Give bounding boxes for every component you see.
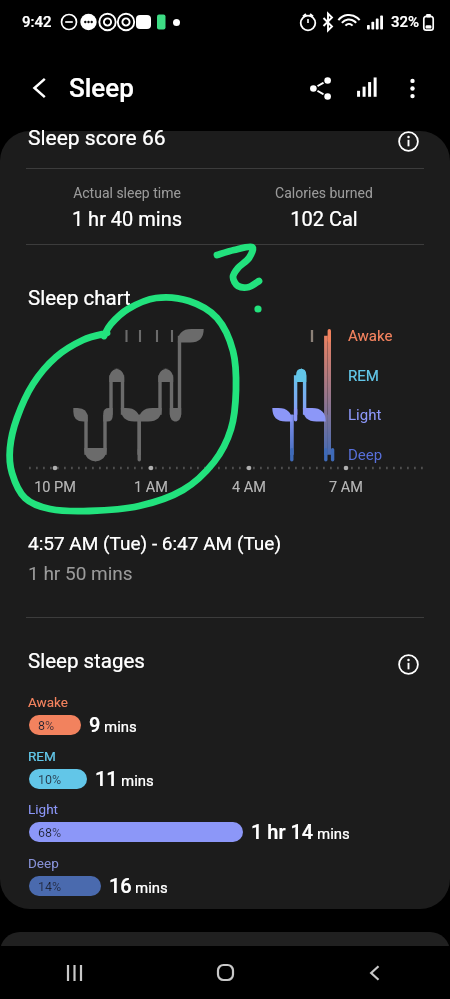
- staticText: 9:42: [22, 13, 52, 31]
- staticText: mins: [104, 718, 137, 736]
- button[interactable]: Recent apps: [0, 946, 150, 999]
- staticText: Light: [28, 801, 58, 817]
- staticText: Deep: [348, 446, 383, 464]
- button[interactable]: Home: [150, 946, 300, 999]
- staticText: 32%: [391, 13, 420, 31]
- staticText: Sleep score 66: [28, 126, 166, 151]
- staticText: 1 hr 50 mins: [28, 562, 133, 584]
- staticText: mins: [317, 825, 350, 843]
- staticText: 10%: [38, 772, 62, 787]
- staticText: 1 hr 40 mins: [27, 207, 227, 230]
- staticText: 102 Cal: [224, 207, 424, 230]
- staticText: 11: [95, 767, 118, 790]
- staticText: Deep: [28, 855, 59, 871]
- staticText: 1 hr 14: [251, 820, 314, 843]
- button[interactable]: More options: [390, 66, 434, 110]
- button[interactable]: Share: [298, 66, 342, 110]
- staticText: Awake: [348, 327, 393, 345]
- staticText: Sleep chart: [28, 286, 131, 310]
- staticText: Awake: [28, 694, 68, 710]
- staticText: 9: [89, 713, 101, 736]
- button[interactable]: Back: [300, 946, 450, 999]
- staticText: 10 PM: [10, 479, 100, 496]
- staticText: 68%: [38, 825, 62, 840]
- staticText: Calories burned: [224, 185, 424, 201]
- staticText: Sleep stages: [28, 649, 145, 673]
- staticText: REM: [28, 748, 56, 764]
- staticText: 8%: [38, 718, 55, 733]
- staticText: 14%: [38, 879, 62, 894]
- staticText: 16: [109, 874, 132, 897]
- button[interactable]: Back: [20, 68, 60, 108]
- staticText: 1 AM: [106, 479, 196, 496]
- staticText: mins: [121, 772, 154, 790]
- staticText: 4:57 AM (Tue) - 6:47 AM (Tue): [28, 532, 282, 554]
- button[interactable]: Information: [392, 125, 424, 157]
- staticText: 7 AM: [301, 479, 391, 496]
- button[interactable]: Information: [392, 648, 424, 680]
- staticText: REM: [348, 367, 379, 385]
- staticText: 4 AM: [204, 479, 294, 496]
- button[interactable]: Statistics: [344, 66, 388, 110]
- staticText: Sleep: [69, 73, 134, 103]
- staticText: Actual sleep time: [27, 185, 227, 201]
- staticText: mins: [135, 879, 168, 897]
- staticText: Light: [348, 406, 382, 424]
